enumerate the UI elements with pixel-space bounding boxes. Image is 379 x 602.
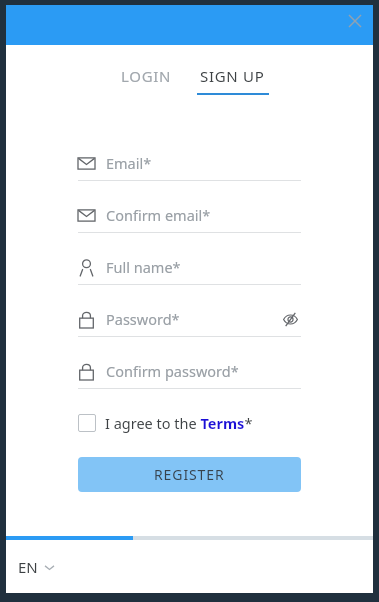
staticText: Confirm email* bbox=[106, 205, 211, 225]
button[interactable]: Password* bbox=[78, 302, 301, 337]
button[interactable]: Confirm email* bbox=[78, 198, 301, 233]
button[interactable]: REGISTER bbox=[78, 457, 301, 492]
staticText: SIGN UP bbox=[200, 66, 265, 86]
staticText: I agree to the Terms* bbox=[105, 413, 253, 433]
button[interactable]: I agree to the Terms* bbox=[78, 413, 253, 433]
staticText: LOGIN bbox=[121, 66, 172, 86]
button[interactable]: LOGIN bbox=[111, 63, 182, 89]
staticText: EN bbox=[18, 557, 38, 577]
button[interactable]: SIGN UP bbox=[196, 63, 269, 95]
staticText: Confirm password* bbox=[106, 361, 239, 381]
staticText: Password* bbox=[106, 309, 180, 329]
staticText: Email* bbox=[106, 153, 152, 173]
staticText: REGISTER bbox=[154, 465, 225, 484]
staticText: Full name* bbox=[106, 257, 181, 277]
button[interactable]: EN bbox=[14, 551, 58, 583]
button[interactable]: Show password bbox=[279, 308, 301, 330]
button[interactable]: Confirm password* bbox=[78, 354, 301, 389]
button[interactable]: Close bbox=[342, 8, 368, 34]
button[interactable]: Email* bbox=[78, 146, 301, 181]
button[interactable]: Full name* bbox=[78, 250, 301, 285]
